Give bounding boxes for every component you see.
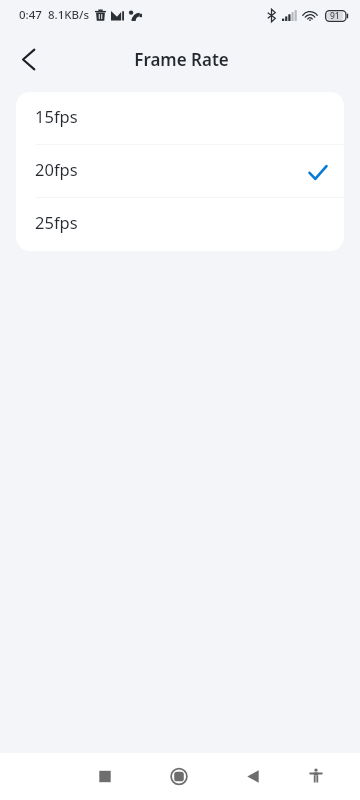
staticText: Frame Rate bbox=[134, 48, 229, 71]
button[interactable]: Recents bbox=[81, 753, 129, 800]
staticText: 0:47 bbox=[19, 7, 42, 23]
button[interactable]: 20fps bbox=[16, 145, 344, 198]
staticText: 8.1KB/s bbox=[48, 7, 90, 23]
staticText: 20fps bbox=[35, 158, 78, 180]
button[interactable]: Home bbox=[155, 753, 203, 800]
button[interactable]: Back bbox=[229, 753, 277, 800]
staticText: 25fps bbox=[35, 211, 78, 233]
button[interactable]: 25fps bbox=[16, 198, 344, 251]
button[interactable]: Accessibility bbox=[292, 753, 340, 800]
button[interactable]: 15fps bbox=[16, 92, 344, 145]
button[interactable]: Back bbox=[4, 35, 52, 83]
staticText: 15fps bbox=[35, 105, 78, 127]
staticText: 91 bbox=[330, 10, 340, 22]
